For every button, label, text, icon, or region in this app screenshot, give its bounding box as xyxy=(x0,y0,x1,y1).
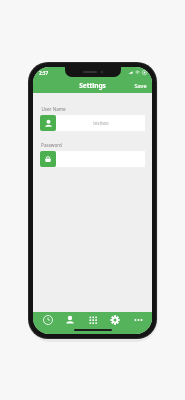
staticText: 2:37 xyxy=(39,70,48,76)
staticText: Settings xyxy=(79,81,106,90)
staticText: Save xyxy=(134,82,147,89)
button[interactable]: testtwo xyxy=(40,115,145,131)
button[interactable] xyxy=(40,151,145,167)
staticText: Password xyxy=(41,142,62,148)
button[interactable]: Apps xyxy=(82,312,104,328)
staticText: testtwo xyxy=(93,120,109,126)
button[interactable]: Save xyxy=(129,79,152,92)
button[interactable]: Recent xyxy=(37,312,59,328)
button[interactable]: Settings xyxy=(104,312,126,328)
button[interactable]: More xyxy=(127,312,149,328)
button[interactable]: Profile xyxy=(59,312,81,328)
staticText: User Name xyxy=(41,106,66,112)
